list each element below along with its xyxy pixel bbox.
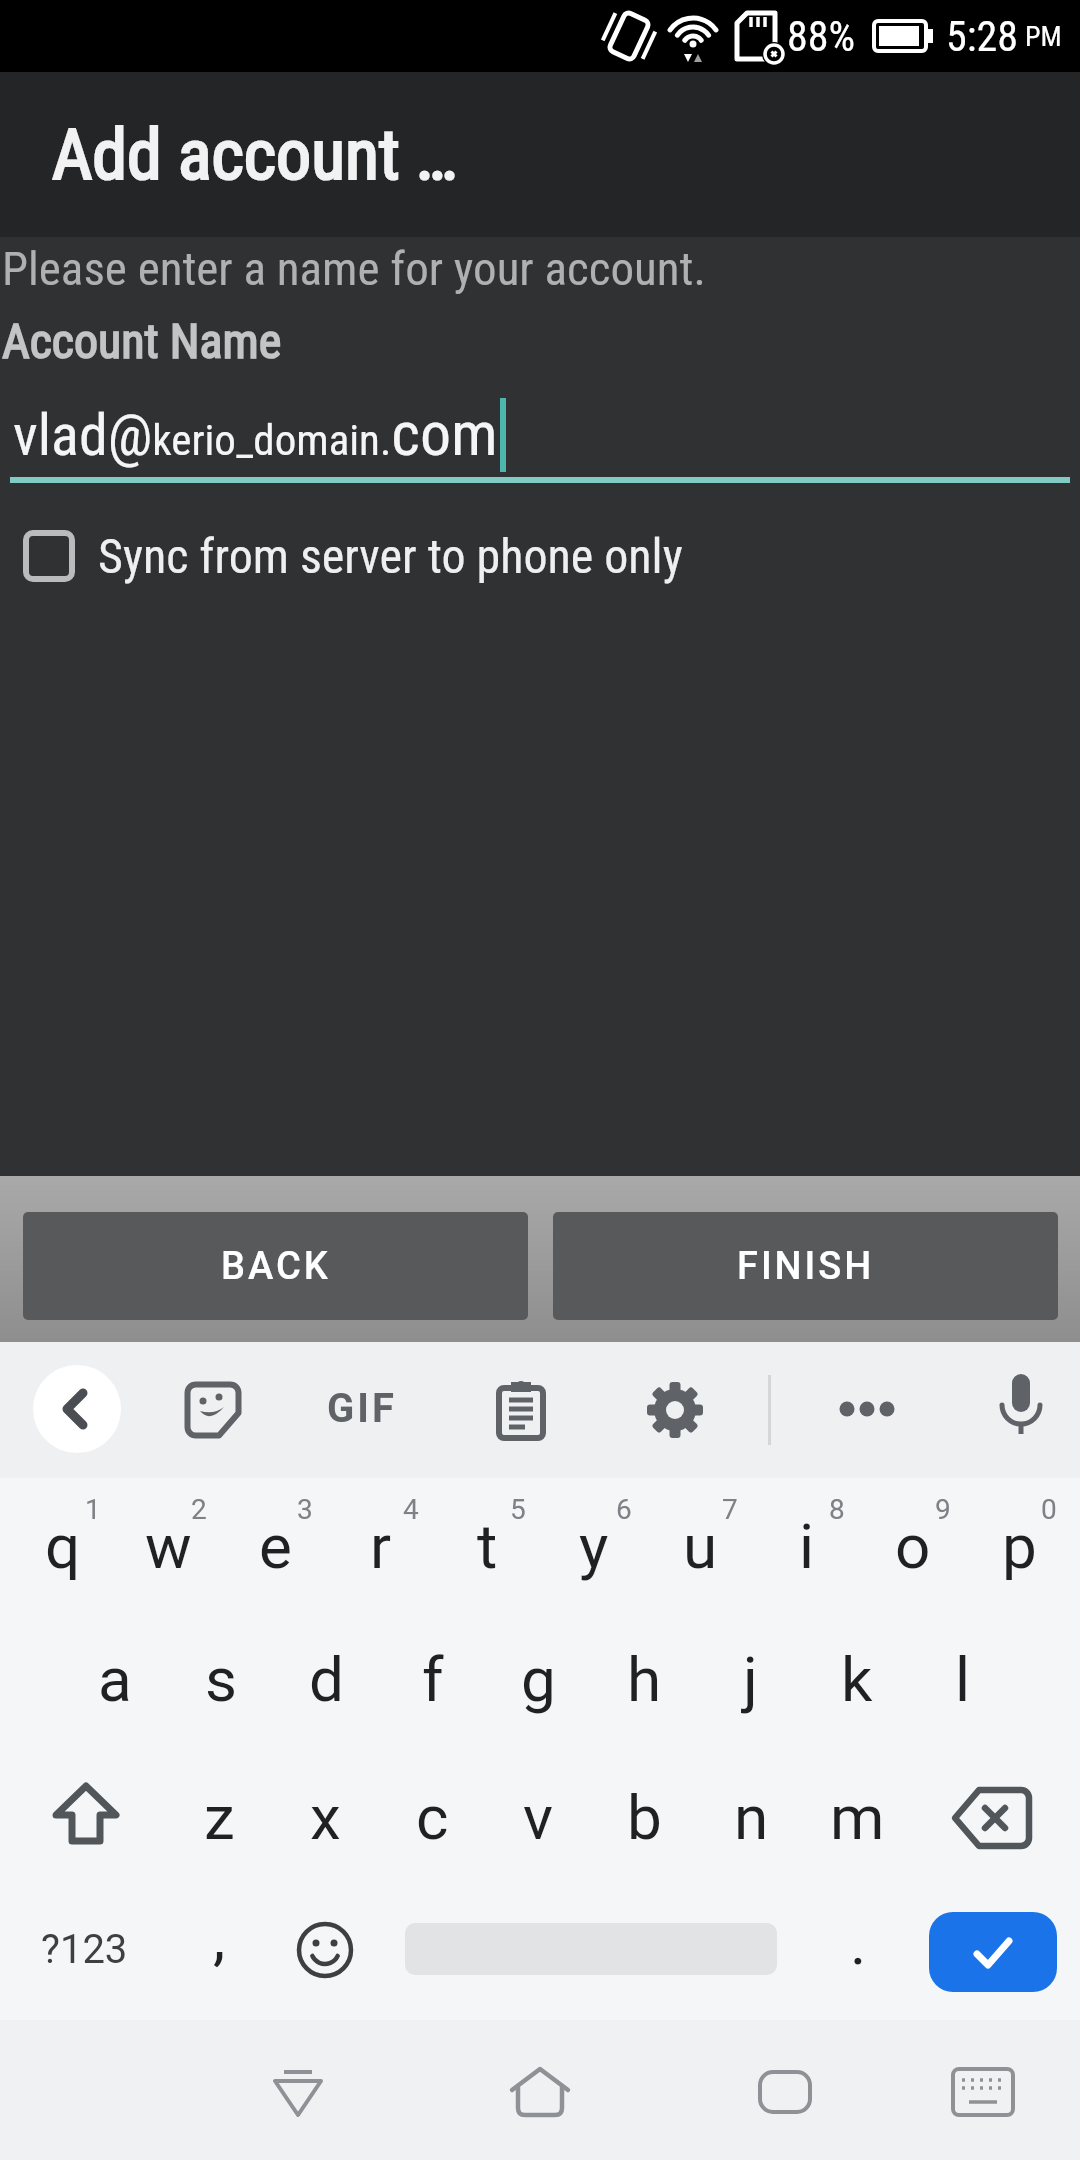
staticText: PM xyxy=(1025,20,1062,53)
button[interactable] xyxy=(268,2062,328,2122)
button[interactable]: t xyxy=(477,1510,498,1583)
button[interactable]: ?123 xyxy=(41,1926,128,1973)
button[interactable] xyxy=(647,1382,703,1438)
button[interactable] xyxy=(510,2066,570,2118)
button[interactable]: z xyxy=(204,1781,235,1854)
button[interactable] xyxy=(33,1365,121,1453)
button[interactable]: q xyxy=(45,1510,81,1583)
button[interactable]: j xyxy=(743,1643,758,1716)
staticText: Please enter a name for your account. xyxy=(2,241,706,296)
button[interactable] xyxy=(757,2070,813,2114)
button[interactable]: c xyxy=(416,1781,449,1854)
button[interactable]: i xyxy=(799,1510,815,1583)
button[interactable]: . xyxy=(850,1906,867,1979)
staticText: 3 xyxy=(297,1493,313,1526)
button[interactable]: m xyxy=(830,1781,885,1854)
staticText: 6 xyxy=(616,1493,632,1526)
button[interactable]: GIF xyxy=(327,1385,397,1432)
staticText: Add account … xyxy=(52,114,458,196)
button[interactable] xyxy=(48,1779,124,1853)
button[interactable]: u xyxy=(683,1510,718,1583)
button[interactable]: n xyxy=(734,1781,769,1854)
staticText: 7 xyxy=(722,1493,738,1526)
button[interactable]: w xyxy=(145,1510,192,1583)
button[interactable] xyxy=(295,1920,355,1980)
button[interactable] xyxy=(186,1383,240,1437)
button[interactable]: x xyxy=(310,1781,341,1854)
button[interactable]: v xyxy=(523,1781,554,1854)
button[interactable]: s xyxy=(205,1643,237,1716)
button[interactable]: FINISH xyxy=(553,1212,1058,1320)
staticText: Sync from server to phone only xyxy=(98,528,683,584)
staticText: vlad@kerio_domain.com xyxy=(13,397,498,470)
button[interactable] xyxy=(994,1372,1048,1452)
staticText: BACK xyxy=(221,1244,331,1289)
staticText: 5 xyxy=(510,1493,526,1526)
button[interactable]: f xyxy=(422,1643,444,1716)
button[interactable]: k xyxy=(841,1643,873,1716)
button[interactable]: g xyxy=(521,1643,556,1716)
button[interactable]: r xyxy=(370,1510,392,1583)
button[interactable] xyxy=(951,1786,1033,1850)
staticText: FINISH xyxy=(737,1244,875,1289)
button[interactable]: h xyxy=(627,1643,662,1716)
button[interactable] xyxy=(929,1912,1057,1992)
staticText: 88% xyxy=(787,12,856,61)
button[interactable]: BACK xyxy=(23,1212,528,1320)
staticText: 5:28 xyxy=(946,12,1019,61)
button[interactable] xyxy=(833,1395,903,1423)
button[interactable]: o xyxy=(895,1510,931,1583)
button[interactable]: Sync from server to phone only xyxy=(23,528,683,584)
button[interactable]: l xyxy=(955,1643,971,1716)
button[interactable] xyxy=(951,2067,1015,2117)
button[interactable]: a xyxy=(98,1643,132,1716)
staticText: 1 xyxy=(85,1493,101,1526)
button[interactable]: y xyxy=(579,1510,609,1583)
staticText: 0 xyxy=(1041,1493,1057,1526)
staticText: 4 xyxy=(403,1493,419,1526)
staticText: 9 xyxy=(935,1493,951,1526)
button[interactable]: e xyxy=(259,1510,292,1583)
staticText: 2 xyxy=(191,1493,207,1526)
button[interactable]: b xyxy=(627,1781,662,1854)
staticText: Account Name xyxy=(2,313,282,369)
button[interactable]: d xyxy=(309,1643,344,1716)
button[interactable]: p xyxy=(1002,1510,1037,1583)
button[interactable]: , xyxy=(213,1901,226,1974)
staticText: 8 xyxy=(829,1493,845,1526)
button[interactable] xyxy=(497,1382,545,1438)
